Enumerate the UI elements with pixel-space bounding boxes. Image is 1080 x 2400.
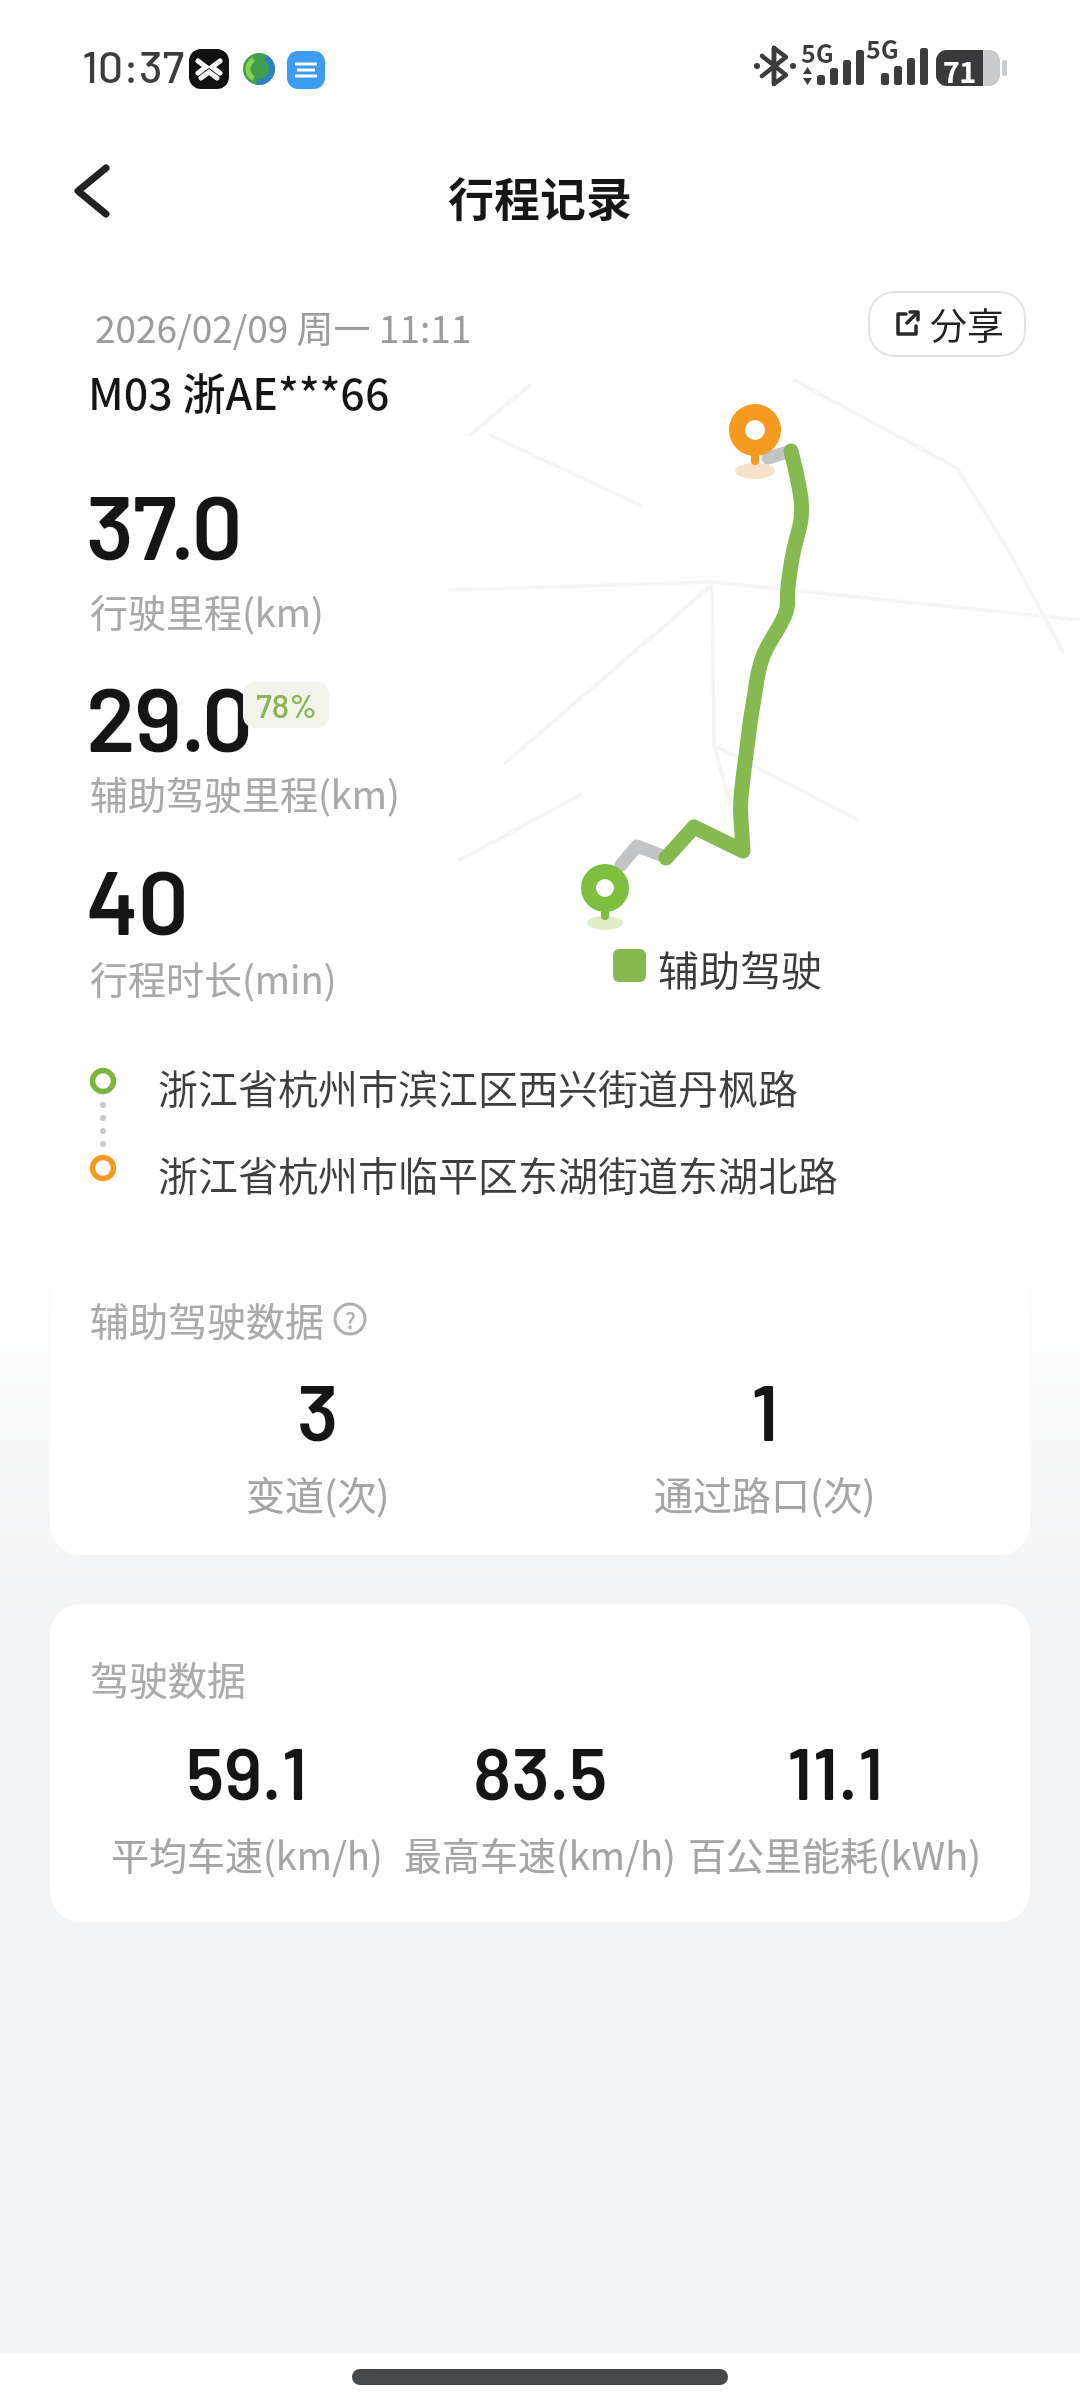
staticText: 5G: [801, 34, 834, 70]
staticText: 5G: [866, 30, 899, 66]
staticText: 平均车速(km/h): [111, 1826, 383, 1881]
staticText: 10:37: [82, 38, 185, 92]
button[interactable]: ?: [333, 1302, 367, 1336]
staticText: 变道(次): [246, 1465, 390, 1521]
staticText: 78%: [256, 685, 317, 725]
staticText: 40: [86, 845, 188, 953]
button[interactable]: [70, 163, 116, 219]
staticText: 1: [751, 1363, 779, 1457]
staticText: 行程时长(min): [90, 950, 337, 1005]
staticText: 通过路口(次): [654, 1465, 876, 1521]
staticText: 行驶里程(km): [90, 583, 324, 638]
staticText: 59.1: [186, 1728, 308, 1814]
staticText: 百公里能耗(kWh): [688, 1826, 982, 1881]
staticText: ?: [345, 1303, 356, 1335]
staticText: 3: [297, 1363, 339, 1457]
staticText: 辅助驾驶: [658, 938, 822, 997]
staticText: 最高车速(km/h): [404, 1826, 676, 1881]
staticText: M03 浙AE***66: [88, 360, 390, 422]
staticText: 浙江省杭州市临平区东湖街道东湖北路: [158, 1145, 838, 1203]
staticText: 行程记录: [448, 163, 632, 230]
staticText: 2026/02/09 周一 11:11: [95, 300, 472, 354]
staticText: 71: [943, 51, 977, 92]
staticText: 29.0: [86, 662, 253, 770]
staticText: 83.5: [473, 1728, 608, 1814]
staticText: 辅助驾驶里程(km): [90, 765, 400, 820]
staticText: 辅助驾驶数据: [90, 1291, 325, 1347]
staticText: 驾驶数据: [90, 1650, 247, 1706]
button[interactable]: 分享: [868, 291, 1026, 357]
staticText: 浙江省杭州市滨江区西兴街道丹枫路: [158, 1058, 798, 1116]
staticText: 分享: [930, 297, 1004, 351]
staticText: 37.0: [86, 470, 242, 578]
staticText: 11.1: [787, 1728, 884, 1814]
